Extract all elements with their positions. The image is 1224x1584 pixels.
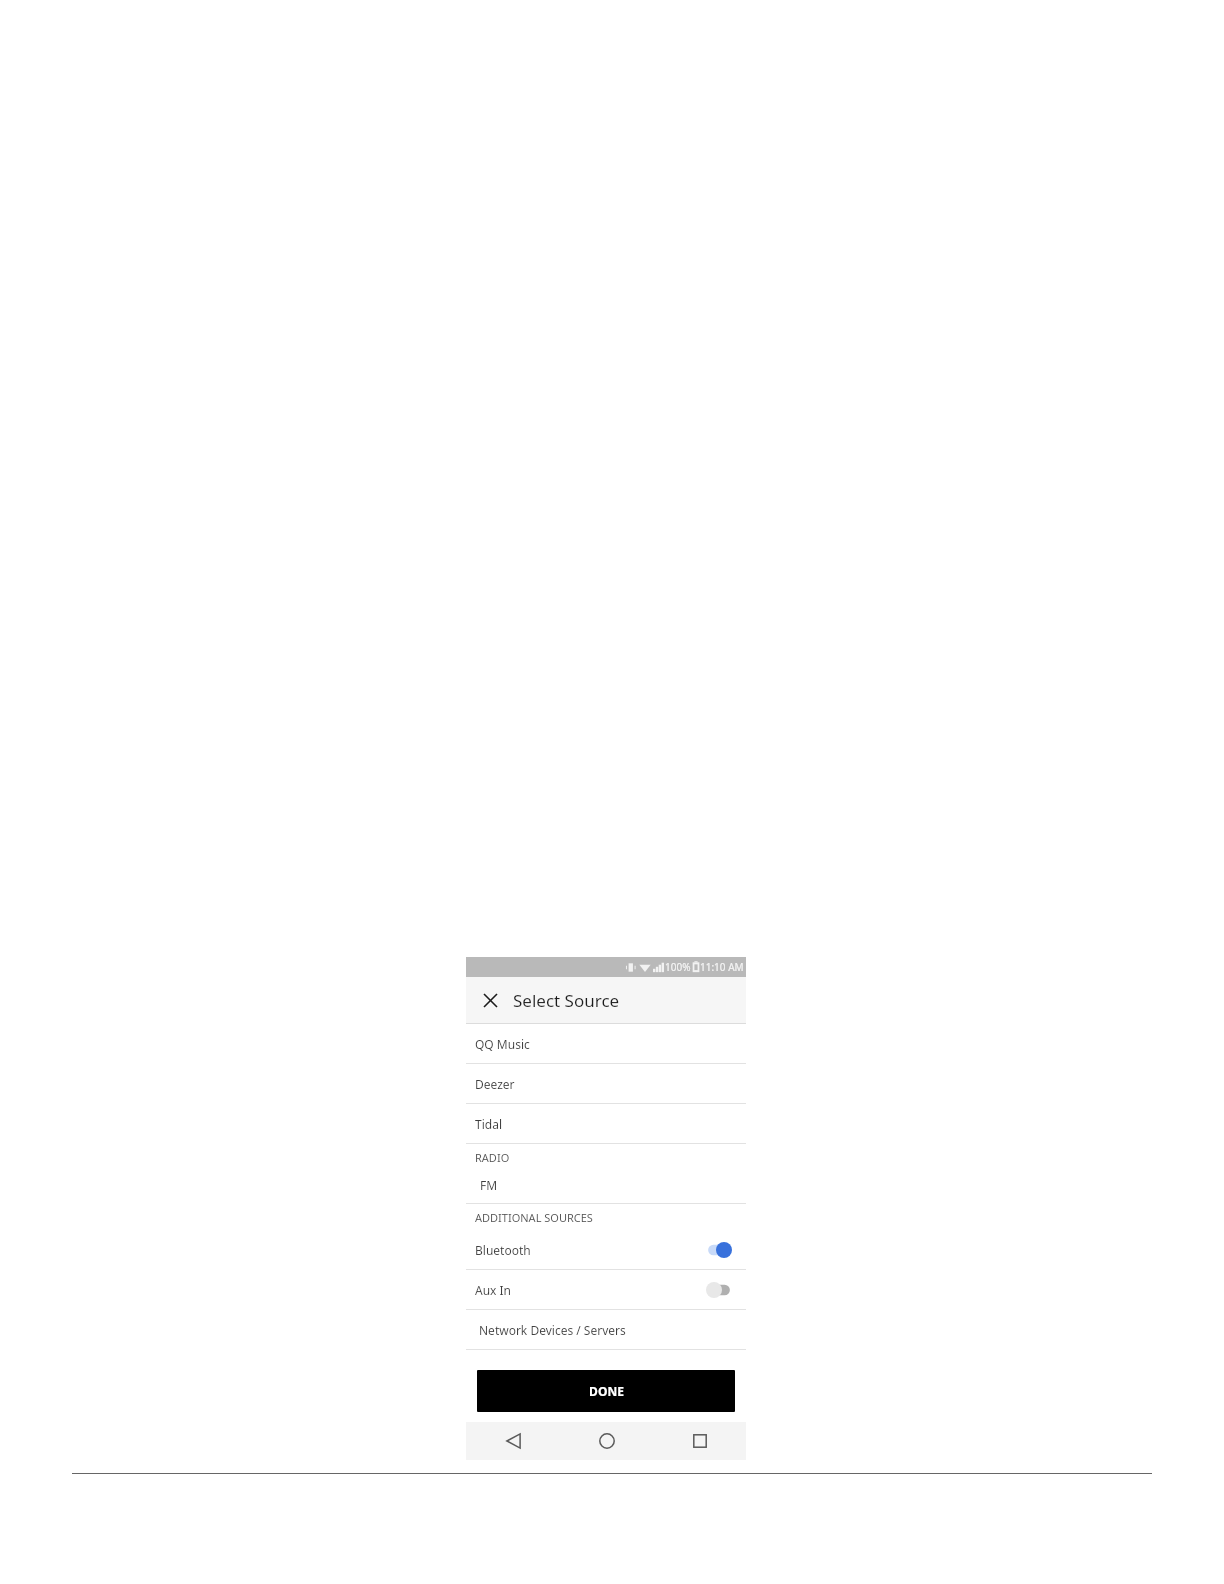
button[interactable]: Tidal: [466, 1104, 746, 1143]
staticText: QQ Music: [475, 1036, 530, 1052]
staticText: Bluetooth: [475, 1242, 531, 1258]
button[interactable]: FM: [466, 1170, 746, 1199]
other: On: [706, 1242, 732, 1258]
staticText: Deezer: [475, 1076, 515, 1092]
button[interactable]: Close: [477, 987, 503, 1013]
staticText: FM: [480, 1177, 498, 1193]
staticText: Tidal: [475, 1116, 502, 1132]
button[interactable]: Recent apps: [653, 1422, 746, 1460]
button[interactable]: Bluetooth: [466, 1230, 746, 1269]
button[interactable]: DONE: [477, 1370, 735, 1412]
staticText: 100%: [665, 960, 691, 974]
staticText: ADDITIONAL SOURCES: [475, 1210, 593, 1225]
button[interactable]: Home: [560, 1422, 653, 1460]
button[interactable]: QQ Music: [466, 1024, 746, 1063]
staticText: DONE: [589, 1383, 624, 1399]
staticText: Network Devices / Servers: [479, 1322, 626, 1338]
staticText: Select Source: [513, 989, 620, 1012]
button[interactable]: Deezer: [466, 1064, 746, 1103]
staticText: RADIO: [475, 1150, 510, 1165]
staticText: Aux In: [475, 1282, 512, 1298]
button[interactable]: Back: [466, 1422, 560, 1460]
button[interactable]: Network Devices / Servers: [466, 1310, 746, 1349]
staticText: 11:10 AM: [700, 960, 744, 974]
other: Off: [706, 1282, 732, 1298]
button[interactable]: Aux In: [466, 1270, 746, 1309]
